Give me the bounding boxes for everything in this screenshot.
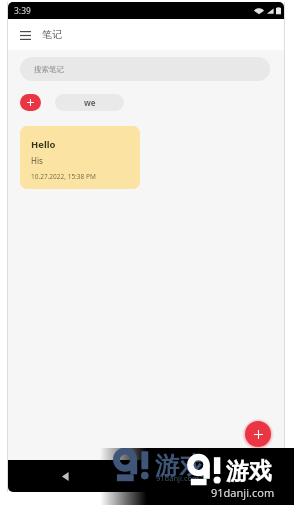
staticText: 91danji.com bbox=[211, 485, 275, 500]
button[interactable]: Add tag bbox=[20, 94, 41, 111]
button[interactable]: Back bbox=[56, 467, 74, 485]
button[interactable]: Hello bbox=[20, 126, 140, 189]
staticText: 游戏 bbox=[155, 451, 204, 482]
button[interactable]: we bbox=[55, 94, 124, 111]
staticText: 笔记 bbox=[42, 28, 62, 41]
staticText: we bbox=[84, 97, 96, 108]
staticText: His bbox=[31, 155, 43, 166]
staticText: 10.27.2022, 15:38 PM bbox=[31, 172, 96, 181]
button[interactable]: New note bbox=[245, 421, 271, 447]
staticText: Hello bbox=[31, 138, 56, 151]
staticText: 搜索笔记 bbox=[34, 65, 64, 74]
button[interactable]: Menu bbox=[19, 29, 31, 41]
staticText: 游戏 bbox=[226, 457, 272, 486]
staticText: 3:39 bbox=[14, 5, 31, 17]
button[interactable]: 搜索笔记 bbox=[20, 57, 270, 81]
staticText: 91danji.com bbox=[156, 473, 200, 483]
